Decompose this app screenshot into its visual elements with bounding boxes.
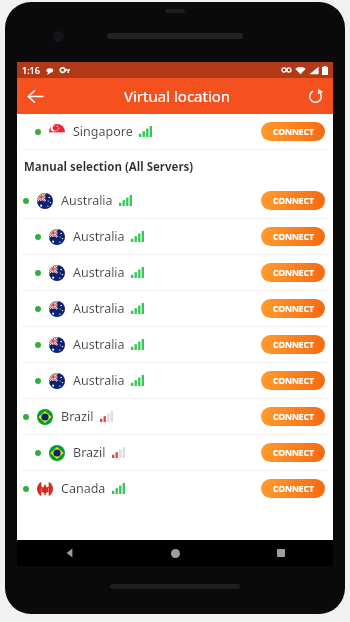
button[interactable]: CONNECT xyxy=(261,191,325,210)
button[interactable]: Australia xyxy=(17,327,333,362)
button[interactable]: Home xyxy=(123,540,228,566)
button[interactable]: CONNECT xyxy=(261,263,325,282)
button[interactable]: Australia xyxy=(17,219,333,254)
staticText: 1:16 xyxy=(22,64,40,76)
button[interactable]: Back xyxy=(17,540,123,566)
staticText: CONNECT xyxy=(273,303,314,315)
staticText: Australia xyxy=(73,228,125,245)
staticText: CONNECT xyxy=(273,483,314,495)
staticText: Australia xyxy=(73,300,125,317)
button[interactable]: Australia xyxy=(17,291,333,326)
staticText: Virtual location xyxy=(124,86,231,106)
button[interactable]: CONNECT xyxy=(261,407,325,426)
staticText: Australia xyxy=(73,264,125,281)
button[interactable]: Australia xyxy=(17,255,333,290)
staticText: CONNECT xyxy=(273,411,314,423)
button[interactable]: CONNECT xyxy=(261,227,325,246)
button[interactable]: CONNECT xyxy=(261,299,325,318)
button[interactable]: CONNECT xyxy=(261,371,325,390)
button[interactable]: Canada xyxy=(17,471,333,506)
button[interactable]: Australia xyxy=(17,183,333,218)
button[interactable]: Brazil xyxy=(17,399,333,434)
staticText: Brazil xyxy=(73,444,106,461)
button[interactable]: CONNECT xyxy=(261,335,325,354)
staticText: CONNECT xyxy=(273,195,314,207)
staticText: Australia xyxy=(61,192,113,209)
staticText: Brazil xyxy=(61,408,94,425)
button[interactable]: Brazil xyxy=(17,435,333,470)
staticText: CONNECT xyxy=(273,267,314,279)
staticText: CONNECT xyxy=(273,231,314,243)
button[interactable]: Singapore xyxy=(17,114,333,149)
button[interactable]: Australia xyxy=(17,363,333,398)
staticText: CONNECT xyxy=(273,339,314,351)
staticText: Manual selection (All Servers) xyxy=(24,159,194,175)
staticText: CONNECT xyxy=(273,126,314,138)
staticText: Australia xyxy=(73,372,125,389)
staticText: Singapore xyxy=(73,123,133,140)
staticText: Australia xyxy=(73,336,125,353)
staticText: CONNECT xyxy=(273,447,314,459)
button[interactable]: CONNECT xyxy=(261,479,325,498)
button[interactable]: Refresh xyxy=(297,78,333,114)
button[interactable]: Back xyxy=(17,78,53,114)
button[interactable]: CONNECT xyxy=(261,443,325,462)
staticText: Canada xyxy=(61,480,106,497)
staticText: CONNECT xyxy=(273,375,314,387)
button[interactable]: Recents xyxy=(228,540,333,566)
button[interactable]: CONNECT xyxy=(261,122,325,141)
